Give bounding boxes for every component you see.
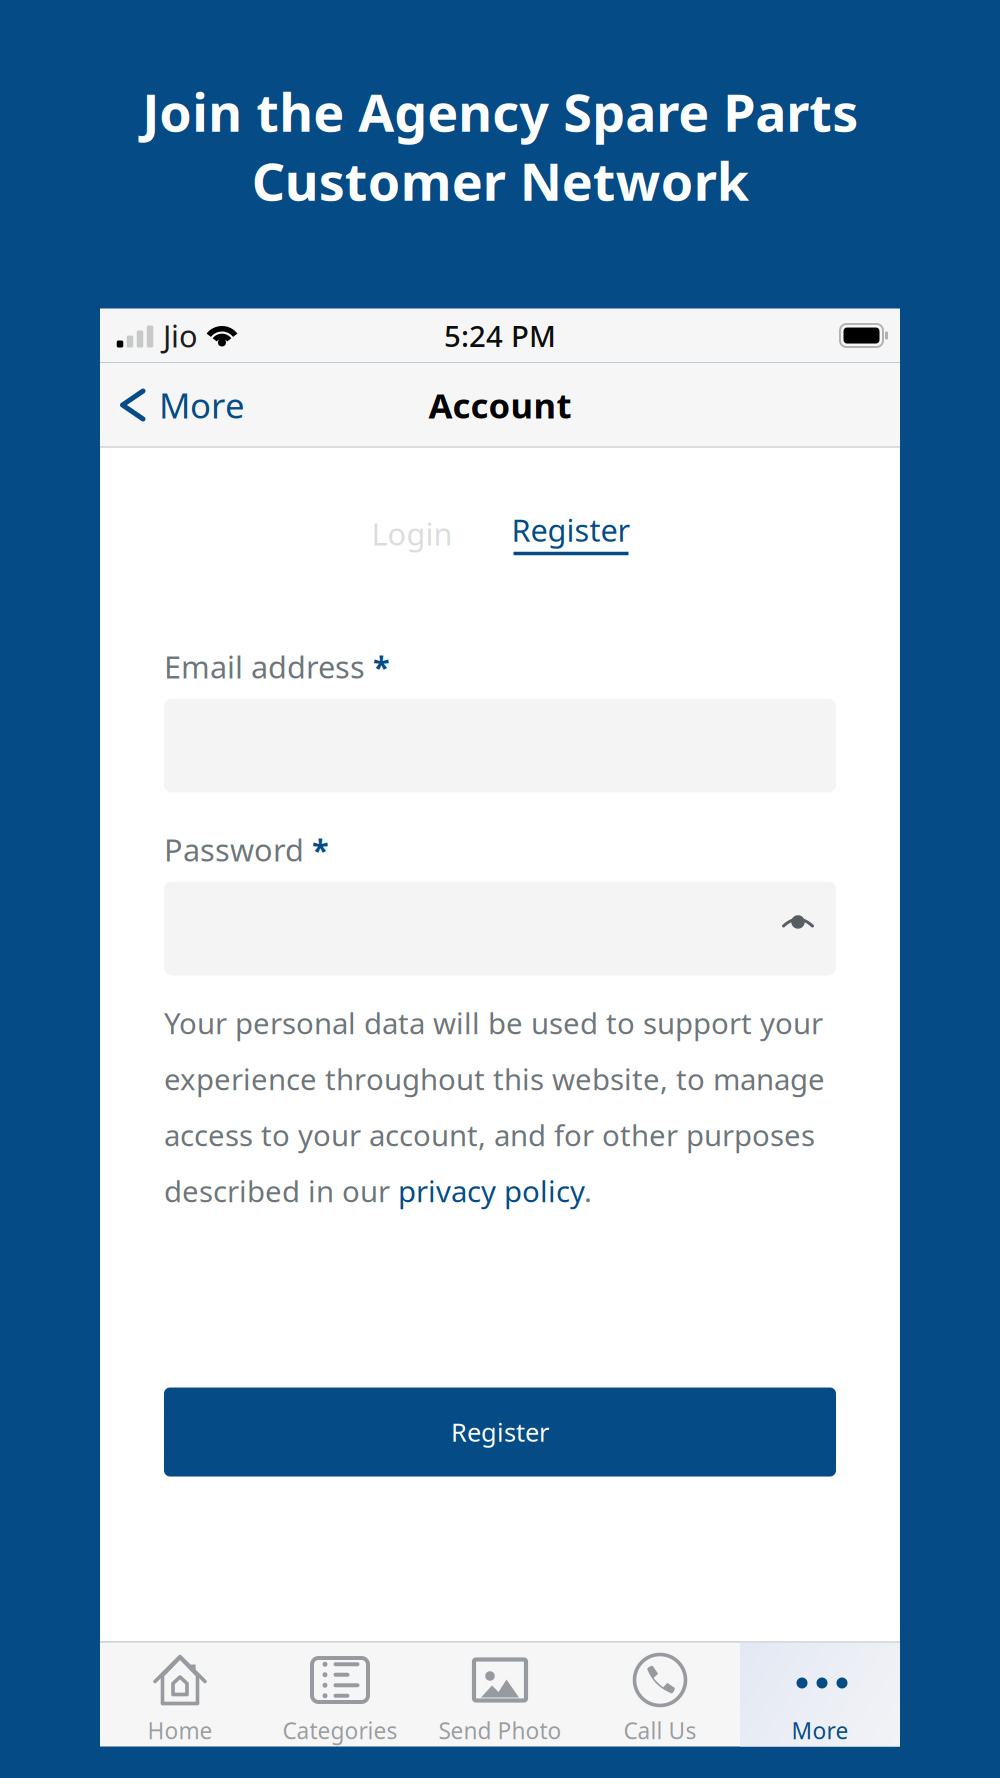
staticText: More <box>159 382 245 428</box>
button[interactable]: Call Us <box>580 1641 740 1746</box>
staticText: 5:24 PM <box>444 316 556 355</box>
staticText: More <box>791 1715 848 1746</box>
staticText: * <box>373 646 390 687</box>
staticText: Your personal data will be used to suppo… <box>164 1003 825 1210</box>
staticText: Password <box>164 829 304 870</box>
staticText: Register <box>451 1415 549 1449</box>
button[interactable]: Register <box>164 1387 836 1476</box>
staticText: * <box>312 829 329 870</box>
staticText: Send Photo <box>438 1715 561 1746</box>
button[interactable]: Categories <box>260 1641 420 1746</box>
staticText: Register <box>511 509 630 550</box>
staticText: Account <box>428 382 571 428</box>
staticText: Jio <box>163 315 198 356</box>
button[interactable]: More <box>100 362 264 447</box>
staticText: Categories <box>282 1715 397 1746</box>
staticText: Join the Agency Spare Parts Customer Net… <box>142 77 858 215</box>
button[interactable]: More <box>740 1641 900 1746</box>
staticText: Call Us <box>623 1715 696 1746</box>
button[interactable]: Send Photo <box>420 1641 580 1746</box>
button[interactable]: Register <box>506 507 636 559</box>
button[interactable]: Home <box>100 1641 260 1746</box>
staticText: Email address <box>164 646 365 687</box>
staticText: Home <box>147 1715 212 1746</box>
staticText: Login <box>371 513 452 554</box>
button[interactable]: Login <box>358 507 466 559</box>
